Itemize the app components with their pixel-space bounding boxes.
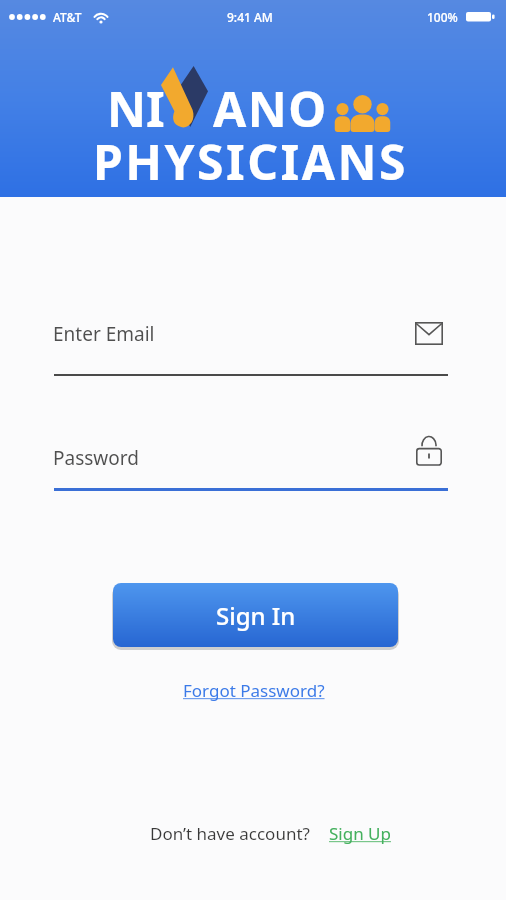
staticText: 9:41 AM bbox=[227, 9, 273, 25]
staticText: Password bbox=[53, 445, 139, 471]
button[interactable]: Enter Email bbox=[40, 305, 460, 380]
staticText: PHYSICIANS bbox=[93, 129, 408, 194]
staticText: AT&T bbox=[53, 9, 82, 25]
staticText: Sign In bbox=[216, 599, 296, 632]
staticText: Forgot Password? bbox=[183, 679, 325, 702]
button[interactable]: Sign In bbox=[113, 583, 398, 647]
button[interactable]: Forgot Password? bbox=[171, 672, 336, 708]
staticText: Enter Email bbox=[53, 321, 155, 347]
button[interactable]: Password bbox=[40, 425, 460, 495]
staticText: NI bbox=[107, 76, 165, 141]
staticText: 100% bbox=[427, 9, 458, 25]
staticText: Don’t have account? bbox=[150, 822, 310, 845]
button[interactable]: Sign Up bbox=[329, 822, 391, 845]
staticText: Sign Up bbox=[329, 822, 391, 845]
staticText: ANO bbox=[213, 76, 328, 141]
